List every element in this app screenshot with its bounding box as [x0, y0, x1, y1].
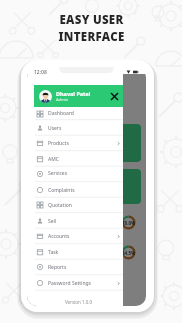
button[interactable]: Reports — [34, 259, 123, 275]
button[interactable]: Products — [34, 135, 123, 151]
staticText: 78.0% — [122, 220, 136, 226]
staticText: Services — [48, 170, 68, 177]
staticText: Users — [48, 125, 62, 132]
staticText: Task — [48, 249, 59, 256]
button[interactable]: Services — [34, 166, 123, 181]
staticText: Products — [48, 140, 69, 147]
staticText: Password Settings — [48, 280, 91, 287]
button[interactable]: Dhaval Patel — [34, 85, 123, 107]
button[interactable]: Quotation — [34, 197, 123, 213]
staticText: Complaints — [48, 187, 75, 194]
button[interactable]: Sell — [34, 213, 123, 229]
button[interactable]: Accounts — [34, 228, 123, 244]
staticText: EASY USER — [59, 12, 124, 28]
button[interactable]: Dashboard — [34, 107, 123, 120]
button[interactable]: AMC — [34, 151, 123, 167]
button[interactable]: Complaints — [34, 182, 123, 198]
button[interactable]: Close — [109, 91, 120, 102]
staticText: INTERFACE — [58, 29, 125, 45]
staticText: 64.5% — [122, 250, 136, 256]
staticText: Sell — [48, 218, 57, 225]
staticText: AMC — [48, 156, 59, 163]
staticText: Dhaval Patel — [56, 90, 91, 97]
staticText: Version 1.0.0 — [65, 299, 93, 305]
staticText: Accounts — [48, 233, 70, 240]
staticText: 12:08 — [34, 69, 47, 76]
staticText: Dashboard — [48, 110, 74, 117]
staticText: 64.5% — [53, 250, 67, 256]
staticText: 78.0% — [53, 220, 67, 226]
staticText: Admin — [56, 97, 69, 102]
staticText: Reports — [48, 264, 67, 271]
button[interactable]: Password Settings — [34, 275, 123, 291]
button[interactable]: Users — [34, 120, 123, 136]
button[interactable]: Task — [34, 244, 123, 260]
staticText: Quotation — [48, 202, 72, 209]
